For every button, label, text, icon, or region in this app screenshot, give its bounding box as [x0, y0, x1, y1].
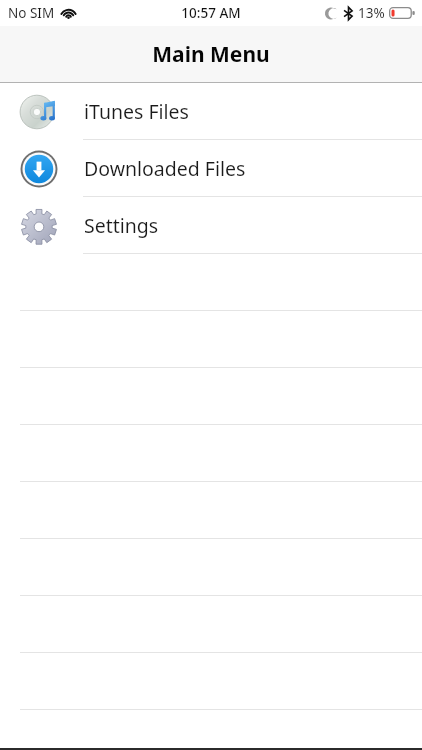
staticText: 10:57 AM: [181, 4, 241, 22]
staticText: 13%: [358, 4, 385, 22]
button[interactable]: Downloaded Files: [0, 140, 422, 197]
staticText: Settings: [84, 212, 159, 239]
staticText: Main Menu: [152, 40, 270, 69]
button[interactable]: iTunes Files: [0, 83, 422, 140]
button[interactable]: Settings: [0, 197, 422, 254]
staticText: Downloaded Files: [84, 155, 246, 182]
staticText: No SIM: [8, 4, 55, 22]
staticText: iTunes Files: [84, 98, 189, 125]
